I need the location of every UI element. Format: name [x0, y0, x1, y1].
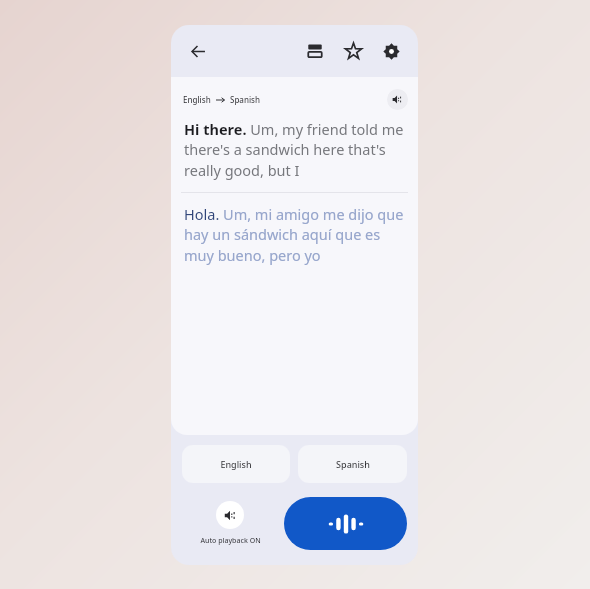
button[interactable]: Settings	[374, 34, 408, 68]
button[interactable]: Back	[181, 34, 215, 68]
button[interactable]: English	[183, 94, 261, 105]
button[interactable]: English	[182, 445, 290, 483]
staticText: English	[220, 458, 252, 470]
staticText: Spanish	[336, 458, 370, 470]
staticText: Hi there. Um, my friend told me there's …	[184, 119, 405, 181]
staticText: Auto playback ON	[200, 536, 261, 546]
button[interactable]: Listen	[284, 497, 407, 550]
staticText: English	[183, 94, 211, 105]
button[interactable]: Play audio	[387, 89, 408, 110]
staticText: Hola. Um, mi amigo me dijo que hay un sá…	[184, 204, 405, 266]
staticText: Spanish	[230, 94, 261, 105]
button[interactable]: Transcript layout	[298, 34, 332, 68]
button[interactable]: Spanish	[298, 445, 407, 483]
button[interactable]: Favorite	[336, 34, 370, 68]
button[interactable]: Auto playback ON	[182, 497, 278, 550]
